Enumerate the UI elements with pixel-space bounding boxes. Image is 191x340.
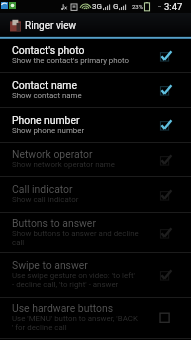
button[interactable]: Contact name [0,73,191,107]
other: Checked [160,269,172,281]
button[interactable]: Network operator [0,143,191,176]
staticText: G [113,2,119,11]
staticText: Show phone number [12,126,85,135]
button[interactable]: Swipe to answer [0,253,191,297]
other: Unchecked [160,312,172,324]
staticText: Use swipe gesture on video: 'to left' - … [12,271,135,289]
staticText: Network operator [12,148,93,160]
staticText: Phone number [12,114,80,126]
staticText: Use hardware buttons [12,302,114,314]
other: Checked [160,154,172,166]
staticText: Show network operator name [12,160,115,169]
button[interactable]: Phone number [0,108,191,142]
staticText: Show the contact's primary photo [12,56,130,65]
staticText: Show contact name [12,91,82,100]
staticText: Use 'MENU' button to answer, 'BACK ' for… [12,314,138,332]
staticText: 23% [132,3,144,10]
button[interactable]: Contact's photo [0,39,191,72]
button[interactable]: Call indicator [0,177,191,212]
staticText: Call indicator [12,183,73,195]
staticText: Contact name [12,79,77,91]
staticText: Contact's photo [12,44,85,56]
staticText: Show buttons to answer and decline call [12,229,139,247]
staticText: Ringer view [25,20,76,32]
staticText: Buttons to answer [12,217,96,229]
other: Checked [160,50,172,62]
other: Checked [160,119,172,131]
other: Checked [160,84,172,96]
button[interactable]: Use hardware buttons [0,298,191,338]
other: Checked [160,189,172,201]
staticText: 3G [92,2,102,11]
other: Checked [160,227,172,239]
staticText: Swipe to answer [12,259,88,271]
staticText: Show call indicator [12,195,79,204]
button[interactable]: Buttons to answer [0,213,191,252]
staticText: 3:47 [164,1,183,12]
